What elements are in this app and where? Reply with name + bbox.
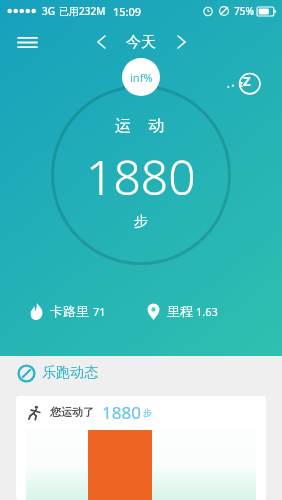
button[interactable]: 乐跑动态 — [18, 356, 282, 390]
staticText: 步 — [134, 213, 148, 231]
staticText: 运 动 — [115, 114, 168, 136]
button[interactable]: Menu — [12, 27, 42, 57]
button[interactable]: Next day — [168, 29, 194, 55]
staticText: inf% — [130, 70, 153, 85]
button[interactable]: Previous day — [88, 29, 114, 55]
staticText: 3G — [42, 4, 55, 18]
staticText: 乐跑动态 — [42, 364, 98, 382]
staticText: 今天 — [126, 33, 156, 52]
button[interactable]: Sleep — [226, 66, 260, 100]
staticText: 步 — [143, 407, 152, 418]
button[interactable]: 今天 — [126, 33, 156, 52]
staticText: 75% — [234, 4, 254, 18]
staticText: 15:09 — [113, 4, 142, 19]
staticText: 1880 — [86, 144, 196, 209]
staticText: 已用232M — [59, 4, 106, 18]
staticText: 71 — [93, 304, 106, 319]
staticText: 1880 — [102, 401, 141, 424]
staticText: 卡路里 — [50, 303, 89, 319]
staticText: 里程 — [167, 303, 193, 319]
button[interactable]: 卡路里 — [30, 296, 141, 326]
staticText: 您运动了 — [50, 405, 94, 419]
staticText: Z — [243, 72, 251, 90]
staticText: 1.63 — [196, 304, 218, 319]
button[interactable]: 您运动了 — [16, 396, 266, 500]
button[interactable]: inf% — [122, 58, 160, 96]
button[interactable]: 里程 — [147, 296, 282, 326]
button[interactable] — [51, 85, 231, 265]
staticText: z — [239, 78, 243, 89]
